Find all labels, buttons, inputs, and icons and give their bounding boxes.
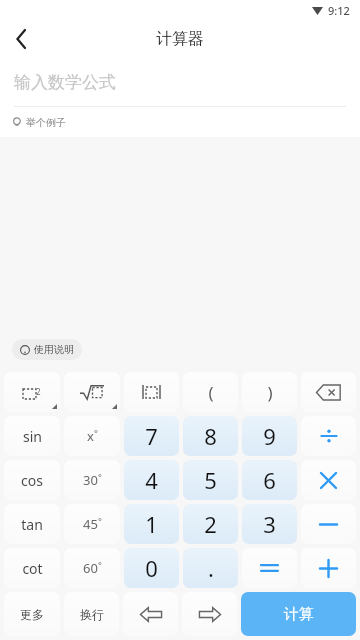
button[interactable]: sin [4,416,60,456]
staticText: ° [98,515,102,527]
staticText: 使用说明 [34,343,74,356]
button[interactable]: Move left [123,592,178,636]
button[interactable]: cos [4,460,60,500]
button[interactable]: cot [4,548,60,588]
button[interactable]: 举个例子 [12,107,360,137]
staticText: 2 [36,386,41,397]
button[interactable]: Backspace [301,372,356,412]
button[interactable]: 3 [242,504,297,544]
button[interactable]: 2 [183,504,238,544]
button[interactable]: 更多 [4,592,60,636]
button[interactable]: Plus [301,548,356,588]
staticText: 计算器 [156,29,204,49]
button[interactable]: 6 [242,460,297,500]
button[interactable]: Square [4,372,60,412]
staticText: 4 [145,465,158,495]
staticText: 9:12 [328,3,350,18]
staticText: 更多 [20,607,44,622]
button[interactable]: 0 [124,548,179,588]
button[interactable]: 30 [64,460,120,500]
button[interactable]: 5 [183,460,238,500]
staticText: 举个例子 [26,116,66,129]
button[interactable]: Back [0,20,44,58]
button[interactable]: Divide [301,416,356,456]
staticText: 8 [204,421,217,451]
button[interactable]: Minus [301,504,356,544]
staticText: 7 [145,421,158,451]
staticText: 45 [83,515,98,533]
staticText: 3 [263,509,276,539]
staticText: 2 [204,509,217,539]
staticText: x [87,427,94,445]
button[interactable]: Absolute value [124,372,179,412]
staticText: cot [22,559,43,578]
staticText: tan [21,515,43,534]
staticText: ° [98,559,102,571]
staticText: 30 [83,471,98,489]
button[interactable]: 7 [124,416,179,456]
button[interactable]: Move right [182,592,237,636]
staticText: 1 [145,509,158,539]
button[interactable]: 1 [124,504,179,544]
button[interactable]: Square root [64,372,120,412]
button[interactable]: tan [4,504,60,544]
staticText: ( [208,381,214,404]
staticText: 5 [204,465,217,495]
staticText: 输入数学公式 [14,72,116,93]
staticText: 换行 [80,607,104,622]
staticText: 计算 [284,605,314,624]
button[interactable]: Multiply [301,460,356,500]
button[interactable]: ( [183,372,238,412]
staticText: sin [23,427,42,446]
button[interactable]: 8 [183,416,238,456]
button[interactable]: 换行 [64,592,119,636]
button[interactable]: ) [242,372,297,412]
button[interactable]: 使用说明 [12,339,82,360]
button[interactable]: 9 [242,416,297,456]
staticText: 0 [145,553,158,583]
button[interactable]: 45 [64,504,120,544]
button[interactable]: Equals [242,548,297,588]
staticText: 60 [83,559,98,577]
staticText: 9 [263,421,276,451]
button[interactable]: 60 [64,548,120,588]
button[interactable]: 4 [124,460,179,500]
staticText: ° [94,427,98,439]
button[interactable]: . [183,548,238,588]
staticText: . [208,553,214,583]
staticText: ) [267,381,273,404]
staticText: 6 [263,465,276,495]
button[interactable]: x [64,416,120,456]
staticText: ° [98,471,102,483]
staticText: cos [21,471,43,490]
button[interactable]: 计算 [241,592,356,636]
